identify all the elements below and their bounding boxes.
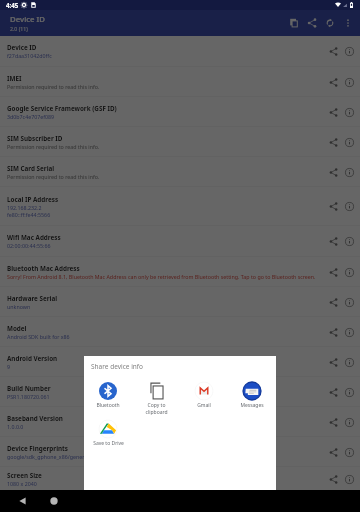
- staticText: Copy to clipboard: [145, 402, 168, 415]
- button[interactable]: Info: [341, 74, 357, 90]
- button[interactable]: Build Number: [0, 377, 360, 407]
- staticText: Permission required to read this info.: [7, 143, 100, 150]
- button[interactable]: Share: [325, 74, 341, 90]
- staticText: 2.0 (11): [10, 25, 28, 32]
- button[interactable]: Share: [325, 104, 341, 120]
- button[interactable]: Share: [325, 233, 341, 249]
- staticText: 1.0.0.0: [7, 423, 24, 430]
- staticText: Bluetooth: [96, 402, 120, 409]
- button[interactable]: Share: [325, 384, 341, 400]
- button[interactable]: Info: [341, 471, 357, 487]
- button[interactable]: Local IP Address: [0, 187, 360, 226]
- button[interactable]: Messages: [228, 377, 276, 415]
- staticText: 192.168.232.2: [7, 204, 42, 211]
- button[interactable]: Info: [341, 264, 357, 280]
- button[interactable]: Share: [325, 134, 341, 150]
- staticText: 3d0b7c4e707ef089: [7, 113, 55, 120]
- button[interactable]: Info: [341, 294, 357, 310]
- button[interactable]: IMEI: [0, 67, 360, 97]
- staticText: Messages: [240, 402, 264, 409]
- staticText: google/sdk_gphone_x86/generic_x86:9/PSR1…: [7, 453, 151, 460]
- staticText: Permission required to read this info.: [7, 83, 100, 90]
- staticText: unknown: [7, 303, 31, 310]
- button[interactable]: Android Version: [0, 347, 360, 377]
- staticText: Hardware Serial: [7, 294, 58, 303]
- staticText: Android SDK built for x86: [7, 333, 70, 340]
- button[interactable]: SIM Card Serial: [0, 157, 360, 187]
- button[interactable]: Info: [341, 104, 357, 120]
- button[interactable]: Save to Drive: [84, 415, 132, 453]
- staticText: 02:00:00:44:55:66: [7, 242, 51, 249]
- button[interactable]: Info: [341, 134, 357, 150]
- staticText: Android Version: [7, 354, 58, 363]
- button[interactable]: Share: [325, 164, 341, 180]
- button[interactable]: Info: [341, 233, 357, 249]
- staticText: Wifi Mac Address: [7, 233, 61, 242]
- button[interactable]: Share: [325, 324, 341, 340]
- button[interactable]: Copy to clipboard: [132, 377, 180, 415]
- staticText: Gmail: [197, 402, 211, 409]
- staticText: Device ID: [10, 14, 46, 25]
- staticText: 4:45: [6, 1, 19, 9]
- staticText: Device ID: [7, 43, 37, 52]
- button[interactable]: Google Service Framework (GSF ID): [0, 97, 360, 127]
- button[interactable]: More options: [339, 11, 357, 35]
- button[interactable]: Bluetooth Mac Address: [0, 257, 360, 287]
- staticText: Device Fingerprints: [7, 444, 69, 453]
- button[interactable]: Info: [341, 164, 357, 180]
- staticText: Build Number: [7, 384, 51, 393]
- staticText: 1080 x 2040: [7, 480, 37, 487]
- staticText: fe80::ff:fe44:5566: [7, 211, 51, 218]
- button[interactable]: Back: [12, 491, 32, 511]
- button[interactable]: SIM Subscriber ID: [0, 127, 360, 157]
- staticText: SIM Card Serial: [7, 164, 55, 173]
- button[interactable]: Device ID: [0, 36, 360, 67]
- staticText: f27daa31042d0ffc: [7, 52, 52, 59]
- button[interactable]: Info: [341, 324, 357, 340]
- button[interactable]: Bluetooth: [84, 377, 132, 415]
- button[interactable]: Gmail: [180, 377, 228, 415]
- staticText: Google Service Framework (GSF ID): [7, 104, 117, 113]
- button[interactable]: Info: [341, 384, 357, 400]
- button[interactable]: Share: [325, 414, 341, 430]
- staticText: 9: [7, 363, 11, 370]
- button[interactable]: Baseband Version: [0, 407, 360, 437]
- button[interactable]: Model: [0, 317, 360, 347]
- staticText: Bluetooth Mac Address: [7, 264, 80, 273]
- button[interactable]: Share: [325, 294, 341, 310]
- button[interactable]: Copy: [285, 11, 303, 35]
- button[interactable]: Device Fingerprints: [0, 437, 360, 467]
- button[interactable]: Share: [325, 198, 341, 214]
- button[interactable]: Info: [341, 354, 357, 370]
- button[interactable]: Home: [44, 491, 64, 511]
- staticText: IMEI: [7, 74, 22, 83]
- button[interactable]: Info: [341, 43, 357, 59]
- staticText: Model: [7, 324, 27, 333]
- staticText: SIM Subscriber ID: [7, 134, 63, 143]
- button[interactable]: Hardware Serial: [0, 287, 360, 317]
- button[interactable]: Share: [325, 354, 341, 370]
- staticText: Sorry! From Android 8.1, Bluetooth Mac A…: [7, 273, 316, 280]
- button[interactable]: Refresh: [321, 11, 339, 35]
- button[interactable]: Share: [303, 11, 321, 35]
- button[interactable]: Screen Size: [0, 467, 360, 490]
- button[interactable]: Share: [325, 264, 341, 280]
- staticText: Permission required to read this info.: [7, 173, 100, 180]
- button[interactable]: Share: [325, 444, 341, 460]
- button[interactable]: Info: [341, 444, 357, 460]
- button[interactable]: Info: [341, 414, 357, 430]
- staticText: Screen Size: [7, 471, 42, 480]
- staticText: Share device info: [91, 362, 143, 371]
- staticText: Local IP Address: [7, 195, 59, 204]
- staticText: Baseband Version: [7, 414, 63, 423]
- staticText: Save to Drive: [93, 440, 124, 447]
- button[interactable]: Share: [325, 471, 341, 487]
- button[interactable]: Share: [325, 43, 341, 59]
- button[interactable]: Wifi Mac Address: [0, 226, 360, 257]
- button[interactable]: Info: [341, 198, 357, 214]
- staticText: PSR1.180720.061: [7, 393, 50, 400]
